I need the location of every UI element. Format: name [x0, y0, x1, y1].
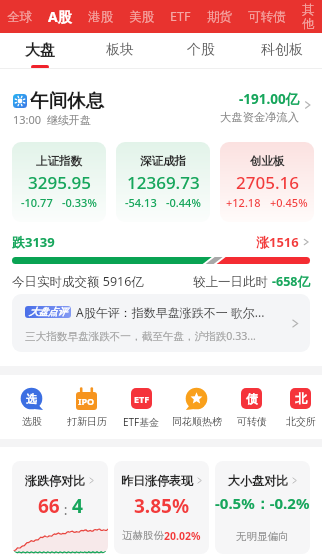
staticText: 打新日历	[67, 415, 107, 428]
staticText: ETF基金	[123, 415, 160, 429]
staticText: +0.45%	[270, 195, 308, 210]
button[interactable]: 全球	[0, 0, 40, 33]
button[interactable]: IPO	[59, 387, 114, 428]
staticText: 同花顺热榜	[172, 415, 222, 428]
staticText: 北	[295, 391, 307, 406]
staticText: -0.5%：-0.2%	[215, 493, 310, 513]
staticText: 债	[246, 391, 258, 406]
staticText: 2705.16	[236, 171, 299, 194]
button[interactable]: 深证成指	[116, 142, 210, 222]
button[interactable]: 期货	[199, 0, 240, 33]
staticText: 选股	[22, 415, 42, 428]
staticText: 创业板	[250, 154, 285, 168]
staticText: 午间休息	[30, 89, 104, 112]
staticText: 港股	[88, 9, 113, 25]
button[interactable]: 可转债	[240, 0, 294, 33]
staticText: 板块	[106, 41, 134, 59]
staticText: :	[60, 500, 72, 519]
button[interactable]: 选	[4, 387, 59, 428]
staticText: 期货	[207, 9, 232, 25]
staticText: 全球	[7, 9, 32, 25]
button[interactable]: 个股	[160, 33, 241, 69]
staticText: 涨跌停对比	[25, 473, 85, 488]
button[interactable]: 其他	[294, 0, 321, 33]
staticText: 大盘资金净流入	[220, 110, 300, 124]
button[interactable]: 跌3139	[0, 233, 322, 290]
button[interactable]: 昨日涨停表现	[114, 461, 209, 554]
button[interactable]: ETF	[162, 0, 199, 33]
button[interactable]: 大盘	[0, 33, 80, 69]
staticText: 无明显偏向	[236, 530, 289, 543]
staticText: 上证指数	[36, 154, 82, 168]
button[interactable]: 板块	[80, 33, 160, 69]
button[interactable]: 科创板	[241, 33, 322, 69]
staticText: 3.85%	[134, 493, 190, 519]
staticText: 北交所	[286, 415, 316, 428]
button[interactable]: 午间休息	[0, 89, 322, 127]
staticText: 个股	[187, 41, 215, 59]
staticText: A股	[48, 7, 72, 26]
button[interactable]: 创业板	[220, 142, 314, 222]
staticText: 12369.73	[127, 171, 200, 194]
staticText: 三大指数早盘涨跌不一，截至午盘，沪指跌0.33...	[25, 329, 256, 343]
staticText: 3295.95	[28, 171, 91, 194]
staticText: -10.77	[21, 195, 53, 210]
staticText: -0.33%	[62, 195, 97, 210]
staticText: 大盘点评	[29, 306, 67, 318]
staticText: 选	[26, 392, 37, 406]
button[interactable]: 涨跌停对比	[12, 461, 108, 554]
button[interactable]: 债	[224, 387, 279, 428]
staticText: 20.02%	[164, 529, 201, 543]
staticText: 13:00 继续开盘	[13, 112, 91, 127]
staticText: 大盘	[25, 41, 55, 60]
staticText: 可转债	[248, 9, 286, 25]
staticText: 可转债	[237, 415, 267, 428]
staticText: IPO	[78, 395, 95, 407]
button[interactable]: 美股	[121, 0, 162, 33]
staticText: 4	[72, 493, 83, 519]
staticText: 科创板	[261, 41, 303, 59]
staticText: ETF	[170, 8, 191, 25]
staticText: -0.44%	[166, 195, 201, 210]
staticText: 较上一日此时	[193, 273, 272, 290]
staticText: 深证成指	[140, 154, 186, 168]
button[interactable]: A股	[40, 0, 80, 33]
staticText: +12.18	[226, 195, 261, 210]
button[interactable]: 同花顺热榜	[169, 387, 224, 428]
staticText: A股午评：指数早盘涨跌不一 歌尔...	[76, 304, 265, 320]
staticText: 涨1516	[256, 233, 299, 251]
staticText: 其他	[302, 2, 313, 32]
staticText: 大小盘对比	[228, 473, 288, 488]
staticText: 66	[38, 493, 60, 519]
staticText: -54.13	[125, 195, 157, 210]
button[interactable]: 大小盘对比	[215, 461, 310, 554]
button[interactable]: 港股	[80, 0, 121, 33]
button[interactable]: 大盘点评	[12, 294, 310, 352]
staticText: 迈赫股份	[122, 529, 164, 542]
staticText: 今日实时成交额 5916亿	[12, 273, 144, 290]
button[interactable]: ETF	[114, 387, 169, 429]
staticText: 昨日涨停表现	[121, 473, 193, 488]
staticText: -658亿	[272, 273, 310, 290]
button[interactable]: 上证指数	[12, 142, 106, 222]
staticText: 美股	[129, 9, 154, 25]
button[interactable]: 北	[279, 387, 322, 428]
staticText: 跌3139	[12, 233, 55, 251]
staticText: -191.00亿	[239, 90, 300, 108]
staticText: ETF	[134, 393, 150, 405]
